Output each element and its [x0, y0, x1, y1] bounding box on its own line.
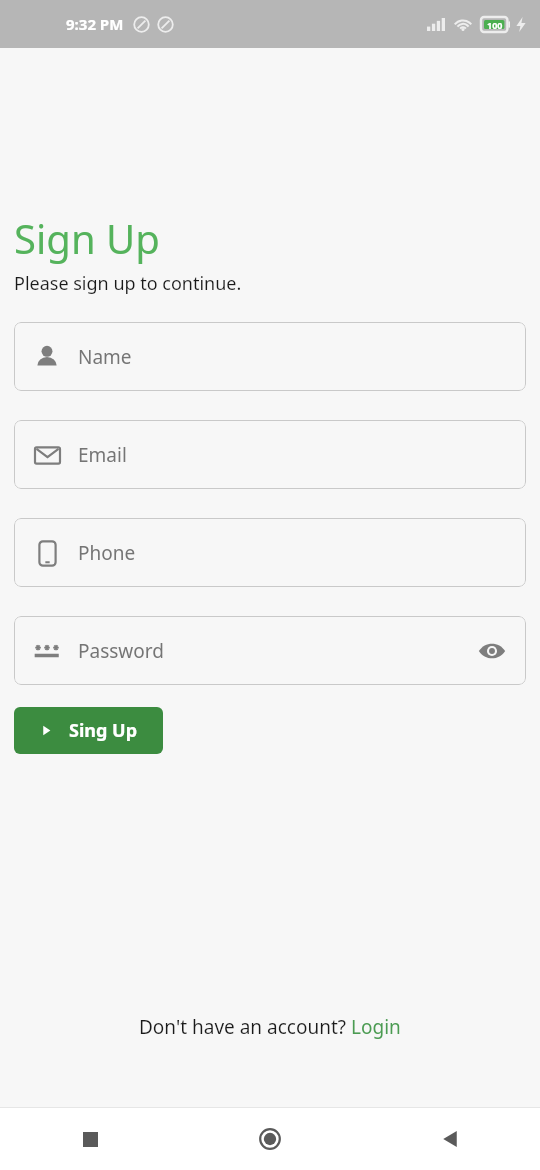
staticText: 9:32 PM [66, 14, 124, 34]
staticText: Email [78, 442, 127, 468]
staticText: Password [78, 638, 164, 664]
button[interactable]: Sing Up [14, 707, 163, 754]
staticText: Login [351, 1014, 401, 1040]
button[interactable]: Home [180, 1108, 360, 1170]
button[interactable]: Show password [472, 631, 512, 671]
button[interactable]: Back [360, 1108, 540, 1170]
staticText: Don't have an account? [139, 1014, 351, 1040]
button[interactable]: Recents [0, 1108, 180, 1170]
staticText: Phone [78, 540, 136, 566]
staticText: Name [78, 344, 132, 370]
staticText: Sign Up [14, 211, 160, 265]
button[interactable]: Login [351, 1014, 401, 1040]
staticText: 100 [487, 19, 503, 31]
staticText: Sing Up [69, 718, 138, 743]
button[interactable]: Email [14, 420, 526, 489]
staticText: Please sign up to continue. [14, 271, 242, 296]
button[interactable]: Password [14, 616, 526, 685]
button[interactable]: Phone [14, 518, 526, 587]
button[interactable]: Name [14, 322, 526, 391]
